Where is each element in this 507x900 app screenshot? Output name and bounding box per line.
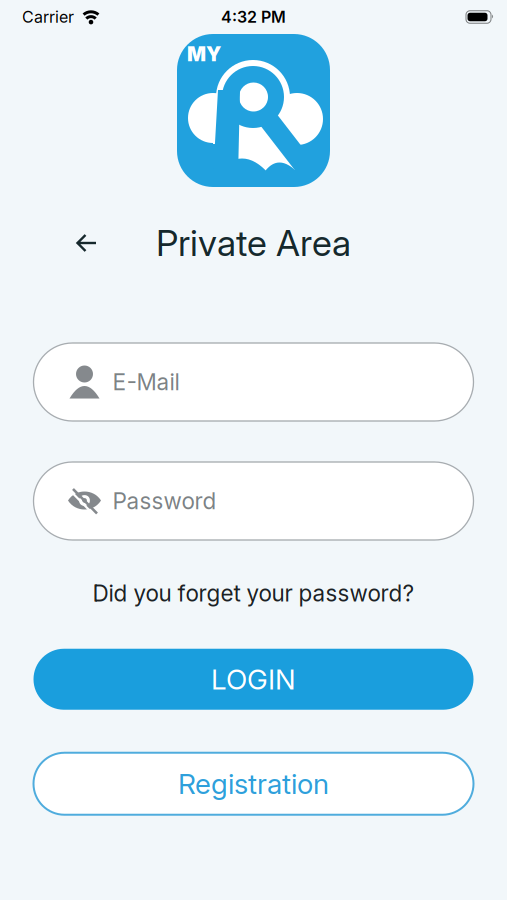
staticText: Registration: [178, 767, 329, 800]
staticText: Password: [112, 488, 216, 514]
button[interactable]: Password: [33, 462, 473, 540]
staticText: Carrier: [22, 8, 74, 26]
staticText: 4:32 PM: [221, 8, 286, 26]
button[interactable]: Back: [0, 218, 97, 268]
staticText: E-Mail: [112, 369, 179, 395]
button[interactable]: E-Mail: [33, 343, 473, 421]
button[interactable]: LOGIN: [33, 649, 473, 710]
staticText: Private Area: [156, 222, 351, 264]
staticText: Did you forget your password?: [92, 580, 414, 607]
button[interactable]: Registration: [33, 753, 473, 815]
button[interactable]: Did you forget your password?: [92, 540, 414, 607]
staticText: LOGIN: [211, 663, 296, 696]
staticText: MY: [187, 42, 221, 66]
